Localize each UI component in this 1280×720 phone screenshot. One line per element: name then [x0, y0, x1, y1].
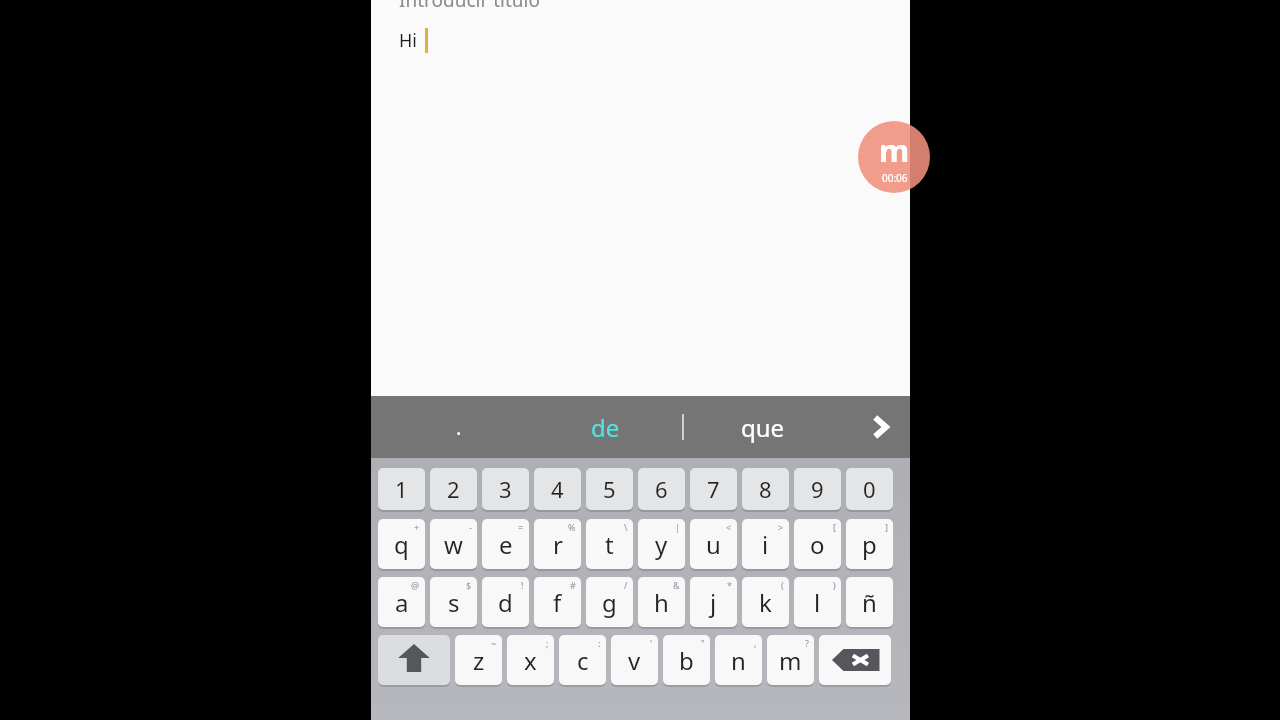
staticText: p — [862, 528, 877, 561]
staticText: b — [679, 644, 694, 677]
staticText: 00:06 — [882, 171, 908, 185]
button[interactable]: ? — [767, 635, 814, 685]
button[interactable]: ] — [846, 519, 893, 569]
staticText: 0 — [863, 474, 876, 504]
button[interactable]: 1 — [378, 468, 425, 510]
staticText: 7 — [707, 474, 720, 504]
button[interactable]: / — [586, 577, 633, 627]
staticText: [ — [833, 521, 836, 533]
staticText: = — [518, 521, 524, 533]
button[interactable]: 4 — [534, 468, 581, 510]
button[interactable]: ! — [482, 577, 529, 627]
button[interactable]: % — [534, 519, 581, 569]
staticText: % — [568, 521, 576, 533]
button[interactable]: " — [663, 635, 710, 685]
staticText: & — [673, 579, 680, 591]
button[interactable]: * — [690, 577, 737, 627]
button[interactable]: , — [715, 635, 762, 685]
button[interactable]: = — [482, 519, 529, 569]
staticText: # — [570, 579, 576, 591]
button[interactable]: ' — [611, 635, 658, 685]
button[interactable]: 7 — [690, 468, 737, 510]
staticText: ] — [885, 521, 888, 533]
staticText: 8 — [759, 474, 772, 504]
staticText: z — [473, 644, 485, 677]
button[interactable]: @ — [378, 577, 425, 627]
staticText: o — [810, 528, 825, 561]
staticText: + — [414, 521, 420, 533]
staticText: q — [394, 528, 409, 561]
staticText: w — [444, 528, 463, 561]
staticText: m — [779, 644, 802, 677]
button[interactable]: & — [638, 577, 685, 627]
button[interactable]: ; — [507, 635, 554, 685]
staticText: > — [778, 521, 784, 533]
button[interactable]: 3 — [482, 468, 529, 510]
button[interactable]: 9 — [794, 468, 841, 510]
button[interactable]: que — [703, 396, 823, 458]
staticText: c — [577, 644, 589, 677]
staticText: t — [605, 528, 614, 561]
button[interactable]: 5 — [586, 468, 633, 510]
staticText: 9 — [811, 474, 824, 504]
staticText: i — [762, 528, 769, 561]
staticText: ? — [805, 637, 809, 649]
staticText: : — [598, 637, 601, 649]
button[interactable]: More suggestions — [850, 396, 910, 458]
staticText: m — [879, 129, 910, 171]
button[interactable]: Shift — [378, 635, 450, 685]
staticText: 2 — [447, 474, 460, 504]
staticText: s — [448, 586, 460, 619]
button[interactable]: ) — [794, 577, 841, 627]
staticText: * — [727, 579, 732, 591]
button[interactable]: ñ — [846, 577, 893, 627]
button[interactable]: 8 — [742, 468, 789, 510]
button[interactable]: 2 — [430, 468, 477, 510]
staticText: x — [524, 644, 537, 677]
button[interactable]: + — [378, 519, 425, 569]
staticText: 3 — [499, 474, 512, 504]
staticText: Introducir título — [399, 0, 540, 13]
staticText: j — [710, 586, 717, 619]
staticText: k — [759, 586, 772, 619]
button[interactable]: $ — [430, 577, 477, 627]
staticText: ( — [781, 579, 784, 591]
staticText: < — [726, 521, 732, 533]
button[interactable]: < — [690, 519, 737, 569]
button[interactable]: Backspace — [819, 635, 891, 685]
button[interactable]: [ — [794, 519, 841, 569]
button[interactable]: ~ — [455, 635, 502, 685]
staticText: n — [731, 644, 746, 677]
button[interactable]: - — [430, 519, 477, 569]
staticText: ' — [650, 637, 653, 649]
button[interactable]: ( — [742, 577, 789, 627]
button[interactable]: | — [638, 519, 685, 569]
staticText: l — [814, 586, 821, 619]
button[interactable]: # — [534, 577, 581, 627]
staticText: 5 — [603, 474, 616, 504]
staticText: $ — [466, 579, 472, 591]
staticText: ) — [833, 579, 836, 591]
button[interactable]: 0 — [846, 468, 893, 510]
staticText: de — [591, 411, 620, 444]
staticText: r — [553, 528, 563, 561]
staticText: g — [602, 586, 617, 619]
button[interactable]: 6 — [638, 468, 685, 510]
staticText: 6 — [655, 474, 668, 504]
button[interactable]: \ — [586, 519, 633, 569]
button[interactable]: > — [742, 519, 789, 569]
staticText: d — [498, 586, 513, 619]
staticText: y — [655, 528, 668, 561]
staticText: u — [706, 528, 721, 561]
button[interactable]: : — [559, 635, 606, 685]
button[interactable]: de — [545, 396, 665, 458]
staticText: a — [395, 586, 409, 619]
staticText: Hi — [399, 28, 417, 53]
button[interactable]: . — [399, 396, 519, 458]
staticText: ! — [521, 579, 524, 591]
staticText: f — [553, 586, 562, 619]
staticText: / — [624, 579, 628, 591]
staticText: e — [499, 528, 513, 561]
staticText: ~ — [491, 637, 497, 649]
staticText: | — [675, 521, 680, 533]
